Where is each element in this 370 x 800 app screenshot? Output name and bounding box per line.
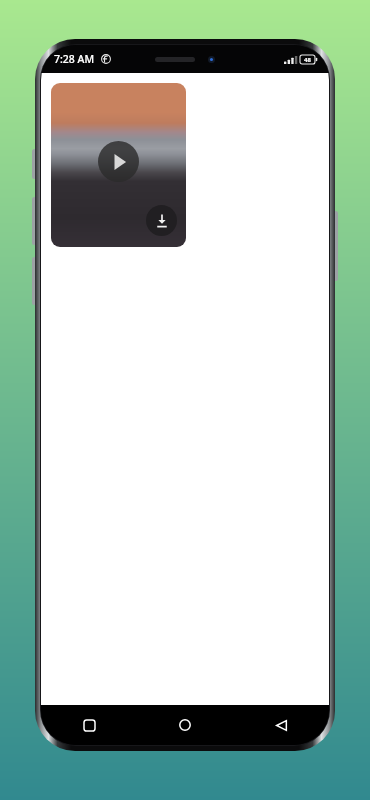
button[interactable]: Download [146,205,177,236]
staticText: 7:28 AM [54,52,95,66]
button[interactable]: Home [137,705,233,745]
button[interactable]: Back [233,705,329,745]
button[interactable]: Recents [41,705,137,745]
staticText: 48 [304,56,311,64]
button[interactable]: Play [51,83,186,247]
button[interactable]: Play [98,141,139,182]
